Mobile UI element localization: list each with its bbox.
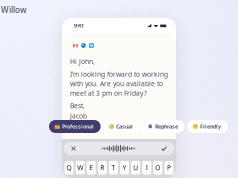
staticText: U [133, 163, 138, 172]
button[interactable]: Cancel [68, 143, 79, 154]
staticText: Best, [70, 101, 85, 110]
staticText: 9:41 [74, 22, 84, 29]
button[interactable]: Y [120, 161, 129, 174]
button[interactable]: Casual [103, 120, 140, 133]
button[interactable]: Q [64, 161, 73, 174]
button[interactable]: Professional [49, 120, 101, 133]
button[interactable]: Confirm [158, 143, 170, 154]
button[interactable]: Rephrase [142, 120, 185, 133]
button[interactable]: O [153, 161, 162, 174]
staticText: Casual [116, 123, 133, 130]
staticText: Jacob [70, 111, 87, 120]
button[interactable]: E [87, 161, 96, 174]
staticText: Willow [1, 4, 26, 15]
button[interactable]: I [142, 161, 151, 174]
staticText: E [89, 163, 93, 172]
staticText: T [111, 163, 115, 172]
staticText: Hi John, [70, 57, 95, 66]
staticText: R [100, 163, 104, 172]
staticText: Rephrase [155, 123, 178, 130]
staticText: W [77, 163, 83, 172]
staticText: O [155, 163, 160, 172]
button[interactable]: P [164, 161, 173, 174]
staticText: I [146, 163, 148, 172]
button[interactable]: W [76, 161, 85, 174]
staticText: I'm looking forward to working with you.… [70, 70, 168, 98]
button[interactable]: Friendly [187, 120, 228, 133]
staticText: Friendly [200, 123, 221, 130]
staticText: Professional [62, 123, 94, 130]
staticText: Y [122, 163, 126, 172]
button[interactable]: U [131, 161, 140, 174]
button[interactable]: T [109, 161, 118, 174]
staticText: Q [66, 163, 71, 172]
staticText: P [167, 163, 171, 172]
button[interactable]: R [98, 161, 107, 174]
